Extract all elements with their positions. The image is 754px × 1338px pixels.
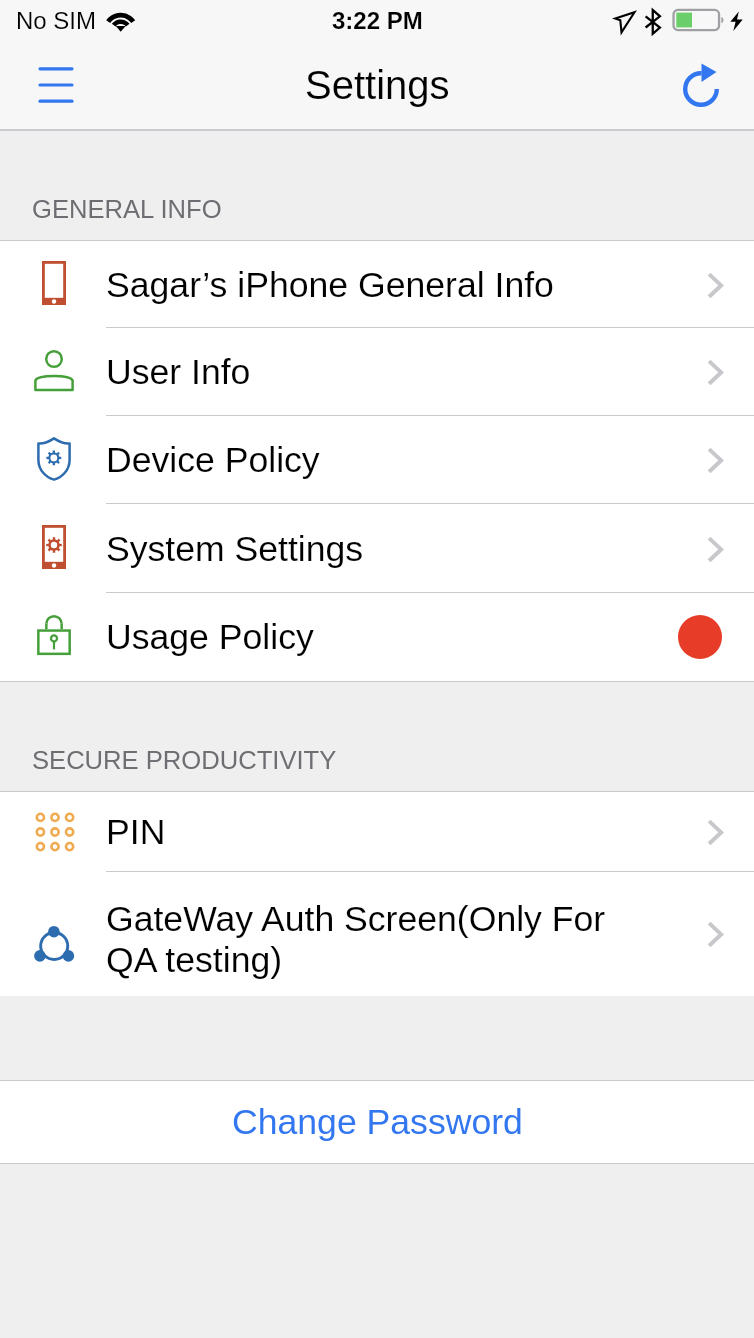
staticText: Usage Policy <box>106 617 654 657</box>
staticText: System Settings <box>106 529 654 569</box>
staticText: Change Password <box>232 1102 523 1142</box>
staticText: 3:22 PM <box>332 7 423 34</box>
staticText: SECURE PRODUCTIVITY <box>32 746 337 775</box>
staticText: PIN <box>106 812 654 852</box>
staticText: GateWay Auth Screen(Only For QA testing) <box>106 899 654 979</box>
button[interactable]: User Info <box>0 328 754 416</box>
button[interactable]: Sagar’s iPhone General Info <box>0 241 754 328</box>
staticText: Device Policy <box>106 440 654 480</box>
button[interactable]: Device Policy <box>0 416 754 504</box>
button[interactable]: Change Password <box>0 1080 754 1164</box>
button[interactable]: Refresh <box>654 40 754 130</box>
button[interactable]: System Settings <box>0 504 754 593</box>
button[interactable]: PIN <box>0 792 754 872</box>
button[interactable]: GateWay Auth Screen(Only For QA testing) <box>0 872 754 996</box>
staticText: GENERAL INFO <box>32 195 222 224</box>
staticText: User Info <box>106 352 654 392</box>
button[interactable]: Menu <box>0 40 112 130</box>
staticText: Sagar’s iPhone General Info <box>106 265 654 305</box>
button[interactable]: Usage Policy <box>0 593 754 681</box>
staticText: Settings <box>305 63 450 108</box>
staticText: No SIM <box>16 7 97 34</box>
